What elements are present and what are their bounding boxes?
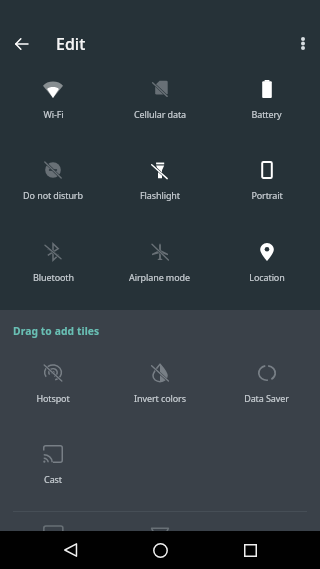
staticText: Invert colors — [134, 392, 186, 404]
staticText: Location — [249, 271, 285, 283]
staticText: Wi-Fi — [43, 108, 64, 120]
staticText: Do not disturb — [23, 189, 83, 201]
button[interactable]: Airplane mode — [106, 243, 213, 293]
button[interactable]: Data Saver — [213, 364, 320, 414]
button[interactable]: Flashlight — [106, 161, 213, 211]
button[interactable]: Invert colors — [106, 364, 213, 414]
staticText: Bluetooth — [33, 271, 74, 283]
staticText: Battery — [251, 108, 282, 120]
staticText: Drag to add tiles — [13, 324, 100, 338]
staticText: Portrait — [251, 189, 283, 201]
staticText: Data Saver — [244, 392, 289, 404]
button[interactable]: Wi-Fi — [0, 80, 106, 130]
button[interactable]: Navigate up — [6, 16, 38, 72]
staticText: Edit — [56, 33, 86, 55]
staticText: Airplane mode — [129, 271, 190, 283]
button[interactable]: Hotspot — [0, 364, 106, 414]
staticText: Flashlight — [140, 189, 180, 201]
staticText: Cast — [44, 473, 62, 485]
button[interactable]: Home — [130, 531, 190, 569]
button[interactable]: Recent apps — [220, 531, 280, 569]
button[interactable]: Back — [40, 531, 100, 569]
button[interactable]: Portrait — [213, 161, 320, 211]
staticText: Cellular data — [134, 108, 186, 120]
staticText: Hotspot — [36, 392, 70, 404]
button[interactable]: Cellular data — [106, 80, 213, 130]
button[interactable]: Cast — [0, 445, 106, 495]
button[interactable]: Do not disturb — [0, 161, 106, 211]
button[interactable]: Bluetooth — [0, 243, 106, 293]
button[interactable]: Battery — [213, 80, 320, 130]
button[interactable]: Location — [213, 243, 320, 293]
button[interactable]: More options — [286, 16, 318, 56]
